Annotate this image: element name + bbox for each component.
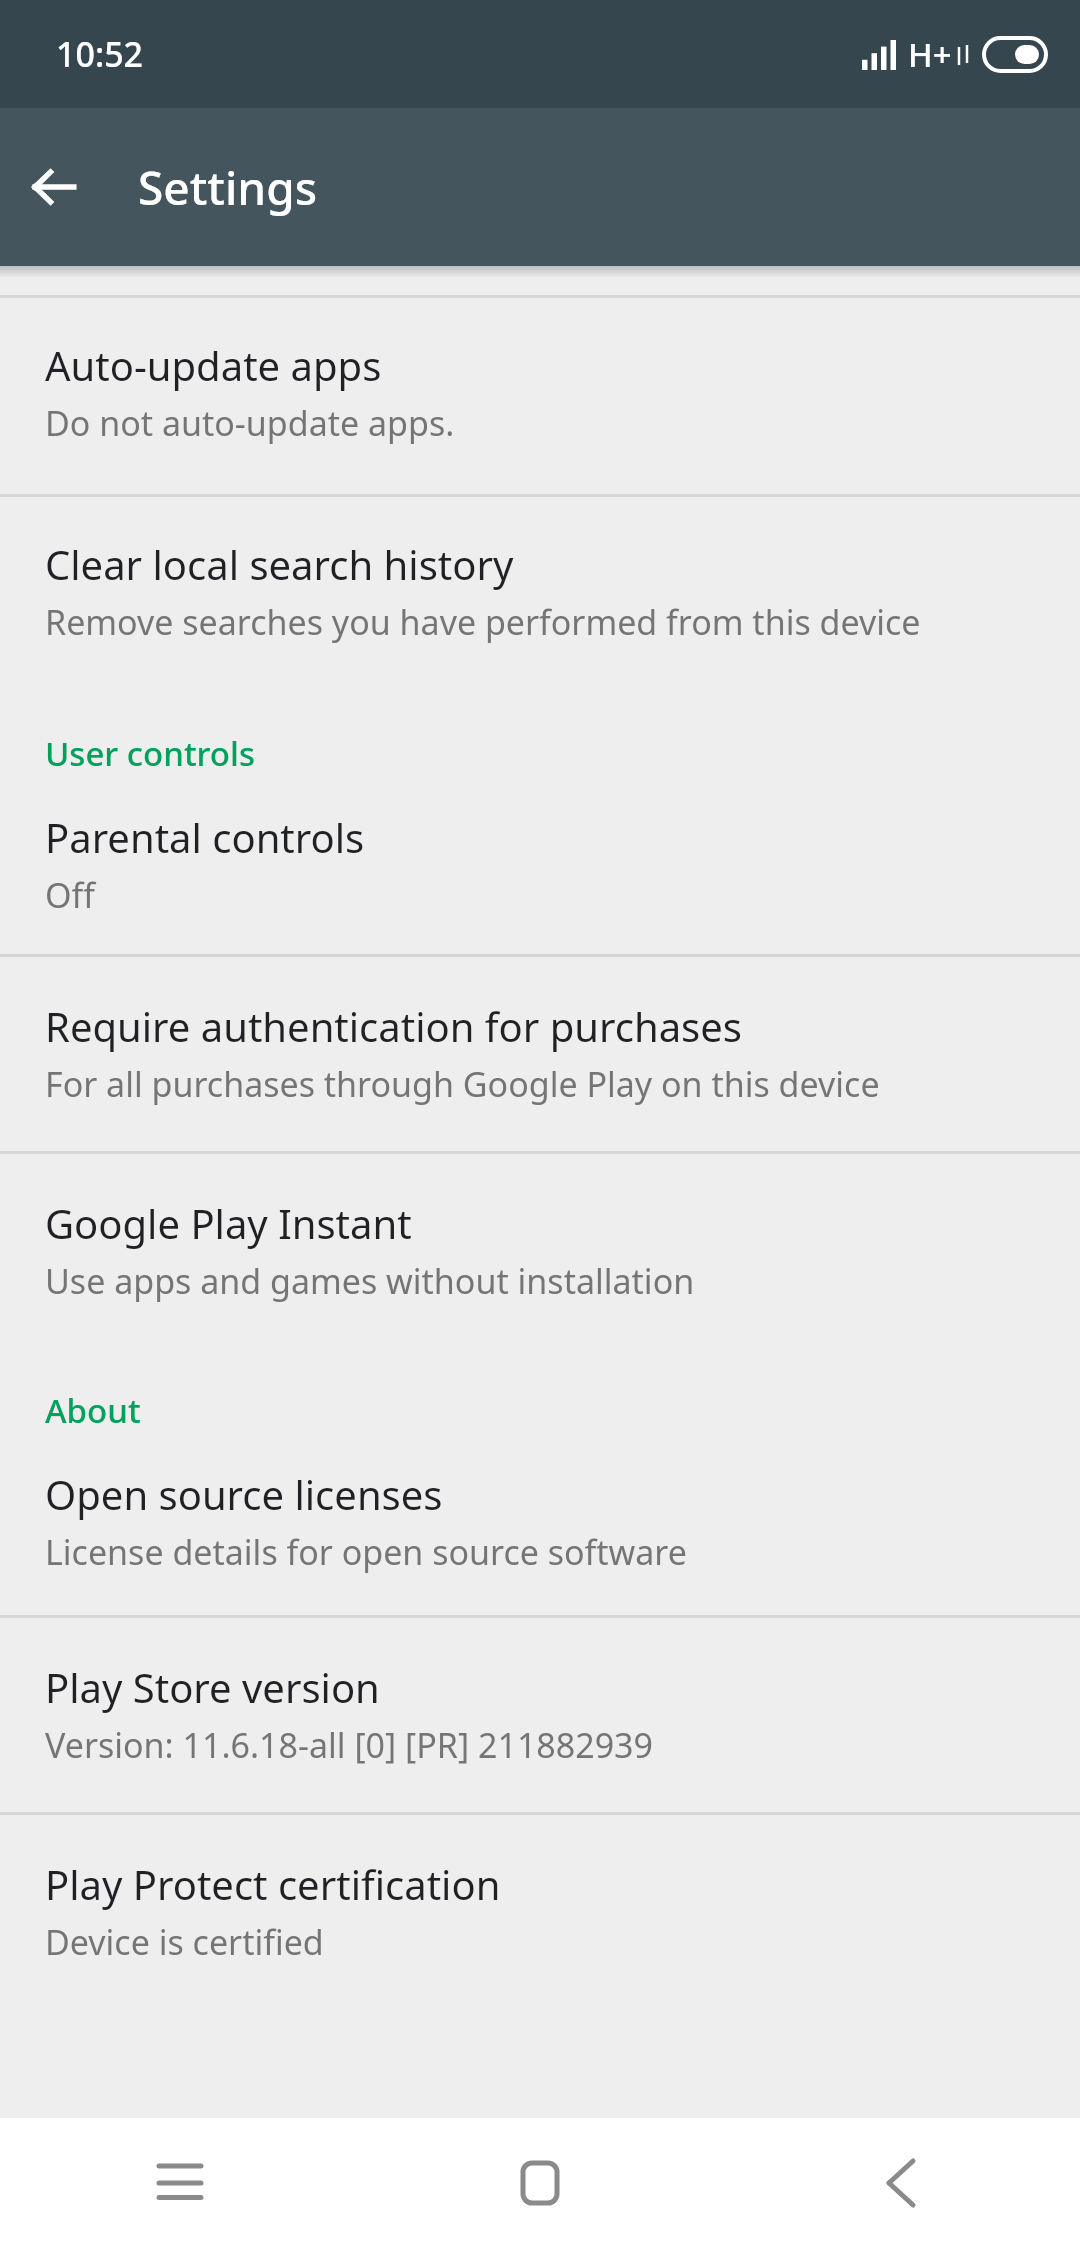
staticText: Device is certified: [45, 1919, 324, 1965]
staticText: Clear local search history: [45, 537, 514, 591]
button[interactable]: Play Store version: [0, 1618, 1080, 1812]
button[interactable]: Back: [14, 147, 94, 227]
button[interactable]: Clear local search history: [0, 497, 1080, 687]
button[interactable]: Open source licenses: [0, 1445, 1080, 1615]
button[interactable]: Parental controls: [0, 788, 1080, 954]
staticText: For all purchases through Google Play on…: [45, 1061, 880, 1107]
staticText: Settings: [138, 156, 318, 219]
button[interactable]: Auto-update apps: [0, 298, 1080, 494]
staticText: Play Protect certification: [45, 1857, 501, 1911]
staticText: Version: 11.6.18-all [0] [PR] 211882939: [45, 1722, 654, 1768]
button[interactable]: Recent apps: [0, 2118, 360, 2248]
staticText: Off: [45, 872, 95, 918]
staticText: Parental controls: [45, 810, 365, 864]
staticText: License details for open source software: [45, 1529, 687, 1575]
staticText: Open source licenses: [45, 1467, 443, 1521]
staticText: Google Play Instant: [45, 1196, 412, 1250]
staticText: About: [45, 1388, 141, 1433]
staticText: Remove searches you have performed from …: [45, 599, 921, 645]
staticText: Require authentication for purchases: [45, 999, 742, 1053]
staticText: Auto-update apps: [45, 338, 382, 392]
button[interactable]: Home: [360, 2118, 720, 2248]
staticText: Use apps and games without installation: [45, 1258, 695, 1304]
staticText: Do not auto-update apps.: [45, 400, 455, 446]
button[interactable]: Require authentication for purchases: [0, 957, 1080, 1151]
staticText: 10:52: [56, 31, 144, 77]
button[interactable]: Back: [720, 2118, 1080, 2248]
button[interactable]: Play Protect certification: [0, 1815, 1080, 2005]
staticText: Play Store version: [45, 1660, 380, 1714]
staticText: H+: [908, 32, 952, 77]
staticText: User controls: [45, 731, 255, 776]
button[interactable]: Google Play Instant: [0, 1154, 1080, 1344]
